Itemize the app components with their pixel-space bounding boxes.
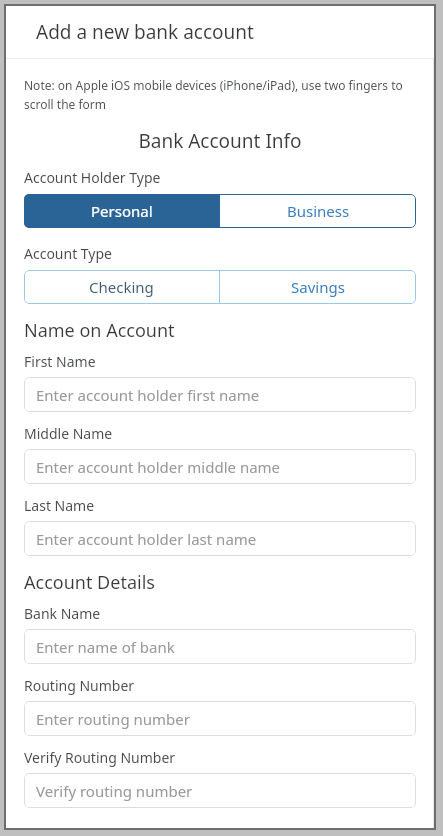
staticText: Verify Routing Number <box>24 748 176 767</box>
button[interactable]: Enter account holder last name <box>24 521 416 556</box>
staticText: Note: on Apple iOS mobile devices (iPhon… <box>24 77 416 112</box>
staticText: Enter account holder middle name <box>36 457 281 477</box>
staticText: Add a new bank account <box>36 19 254 45</box>
staticText: Enter name of bank <box>36 637 175 657</box>
button[interactable]: Savings <box>220 270 416 304</box>
button[interactable]: Verify routing number <box>24 773 416 808</box>
staticText: Personal <box>91 201 153 221</box>
button[interactable]: Checking <box>24 270 219 304</box>
staticText: Account Holder Type <box>24 168 161 187</box>
staticText: Bank Name <box>24 604 101 623</box>
staticText: Verify routing number <box>36 781 193 801</box>
staticText: Savings <box>291 277 345 297</box>
button[interactable]: Business <box>220 194 416 228</box>
staticText: Checking <box>89 277 154 297</box>
staticText: Middle Name <box>24 424 113 443</box>
staticText: Business <box>287 201 350 221</box>
button[interactable]: Personal <box>24 194 219 228</box>
staticText: Routing Number <box>24 676 135 695</box>
button[interactable]: Enter routing number <box>24 701 416 736</box>
button[interactable]: Enter name of bank <box>24 629 416 664</box>
staticText: Account Type <box>24 244 113 263</box>
button[interactable]: Enter account holder first name <box>24 377 416 412</box>
staticText: First Name <box>24 352 96 371</box>
staticText: Last Name <box>24 496 95 515</box>
staticText: Bank Account Info <box>24 128 416 154</box>
staticText: Enter account holder first name <box>36 385 260 405</box>
staticText: Enter routing number <box>36 709 190 729</box>
staticText: Account Details <box>24 570 155 595</box>
staticText: Enter account holder last name <box>36 529 257 549</box>
staticText: Name on Account <box>24 318 175 343</box>
button[interactable]: Enter account holder middle name <box>24 449 416 484</box>
